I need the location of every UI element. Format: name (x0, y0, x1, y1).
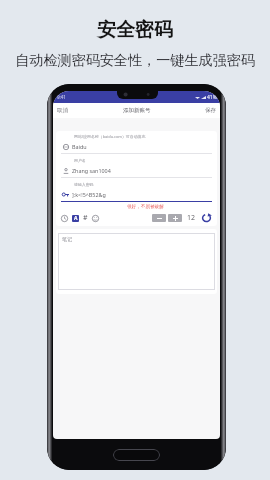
button[interactable]: Settings (61, 215, 68, 222)
button[interactable]: 取消 (53, 107, 68, 114)
button[interactable]: 笔记 (62, 236, 211, 287)
staticText: A (74, 215, 78, 222)
button[interactable]: Emoji (92, 215, 99, 222)
button[interactable]: Regenerate password (201, 213, 212, 223)
staticText: 用户名 (74, 158, 86, 163)
staticText: 请输入密码 (74, 182, 94, 187)
staticText: 41% (207, 94, 217, 101)
staticText: 笔记 (62, 236, 72, 242)
button[interactable]: Home (113, 449, 160, 461)
staticText: 自动检测密码安全性，一键生成强密码 (15, 51, 255, 69)
staticText: Baidu (72, 143, 87, 150)
button[interactable]: A (72, 215, 79, 222)
staticText: 很好，不易被破解 (127, 204, 164, 210)
staticText: 添加新账号 (123, 107, 151, 114)
button[interactable]: Increase length (168, 214, 182, 222)
staticText: 网站/应用名称（baidu.com）可自动填充 (74, 134, 146, 139)
staticText: Zhang san1004 (72, 167, 111, 174)
button[interactable]: Decrease length (152, 214, 166, 222)
staticText: 12 (187, 213, 196, 223)
staticText: ]:k<!5^B52&g (72, 191, 106, 198)
staticText: 9:41 (57, 94, 66, 100)
button[interactable]: # (83, 213, 88, 223)
button[interactable]: 保存 (205, 107, 220, 114)
staticText: 安全密码 (97, 18, 173, 42)
